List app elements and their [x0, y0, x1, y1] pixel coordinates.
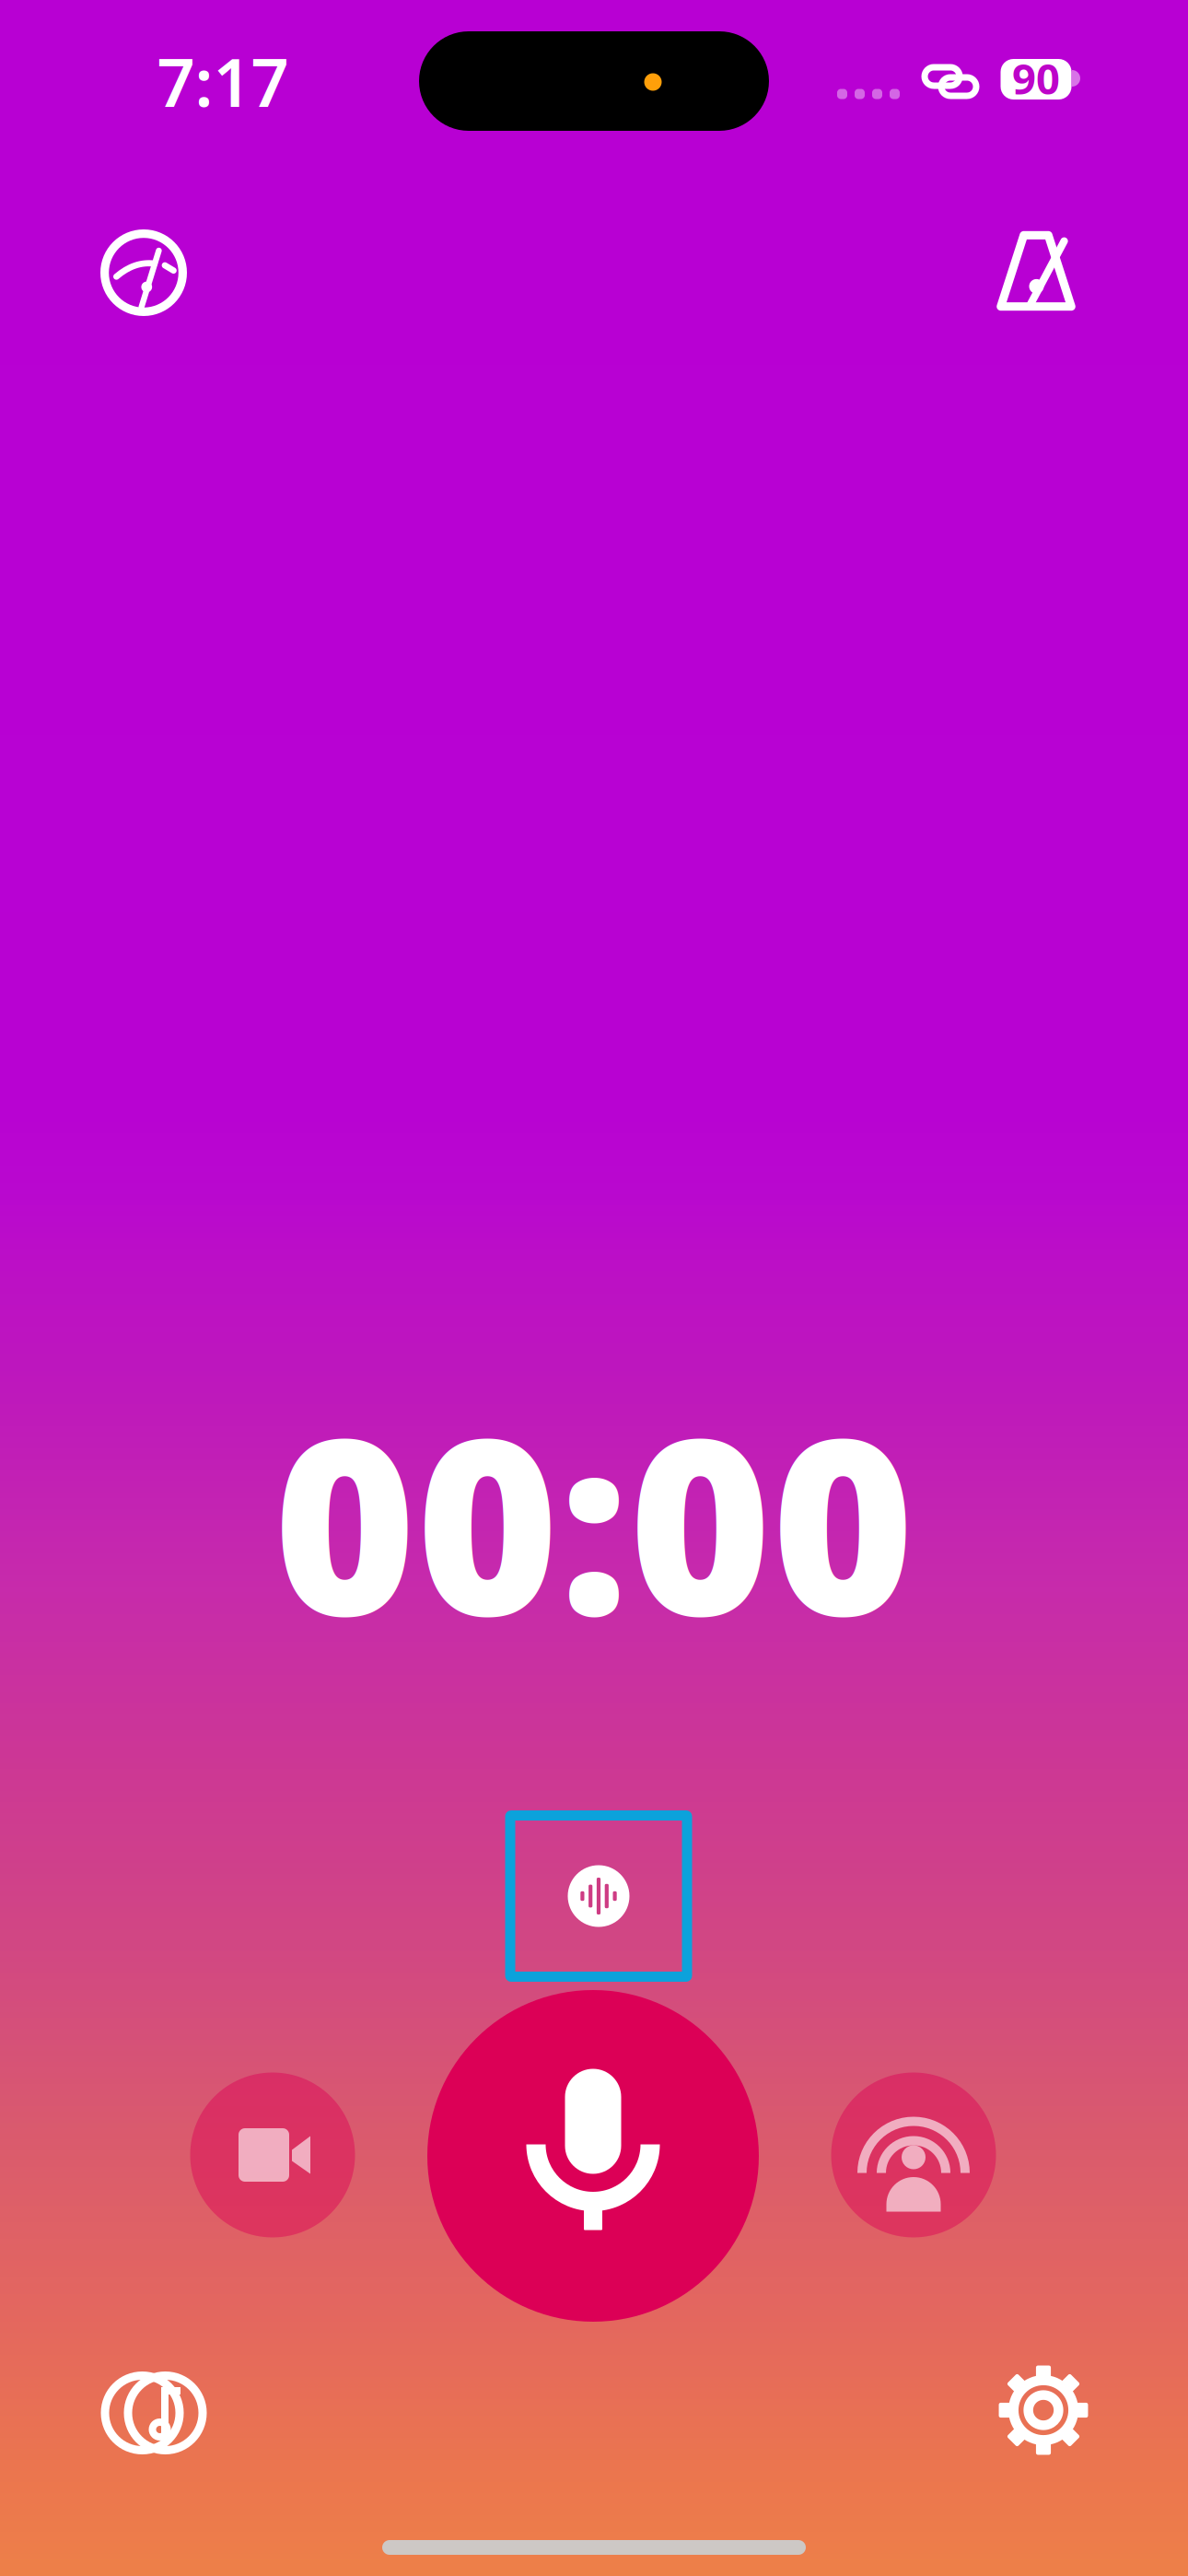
button[interactable]: Record [422, 1985, 764, 2327]
button[interactable]: Live broadcast [821, 2063, 1006, 2247]
staticText: 90 [1012, 51, 1060, 106]
button[interactable]: Waveform [505, 1810, 692, 1982]
button[interactable]: Settings [974, 2341, 1112, 2479]
button[interactable]: Metronome [967, 202, 1105, 340]
staticText: 00:00 [274, 1359, 914, 1682]
button[interactable]: Library [80, 2339, 227, 2487]
button[interactable]: Tuner [75, 204, 213, 342]
button[interactable]: Record video [181, 2063, 365, 2247]
staticText: 7:17 [157, 37, 289, 125]
